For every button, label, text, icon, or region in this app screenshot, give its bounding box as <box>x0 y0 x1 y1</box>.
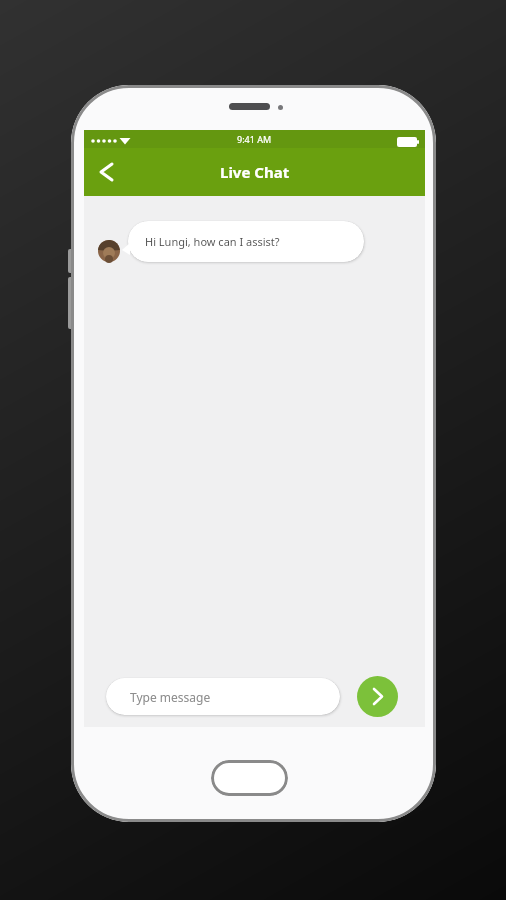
button[interactable]: Hi Lungi, how can I assist? <box>128 221 364 262</box>
staticText: Hi Lungi, how can I assist? <box>145 234 280 249</box>
button[interactable] <box>211 760 288 796</box>
button[interactable] <box>84 148 132 196</box>
staticText: 9:41 AM <box>237 133 272 145</box>
staticText: Live Chat <box>220 162 290 182</box>
button[interactable]: Type message <box>106 678 340 715</box>
staticText: Type message <box>130 689 211 705</box>
button[interactable] <box>357 676 398 717</box>
